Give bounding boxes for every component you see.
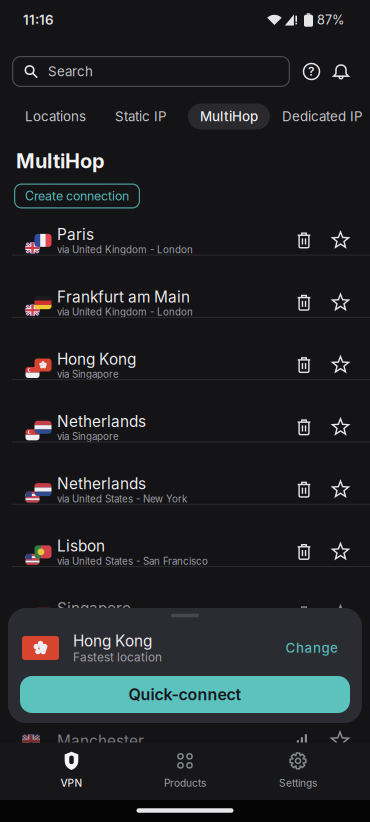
staticText: via Singapore bbox=[57, 431, 119, 442]
button[interactable]: Delete Frankfurt am Main connection bbox=[297, 295, 311, 311]
button[interactable]: Paris bbox=[0, 209, 370, 271]
button[interactable]: Hong Kong bbox=[0, 334, 370, 396]
staticText: via United States - San Francisco bbox=[57, 555, 208, 567]
button[interactable]: Delete Paris connection bbox=[297, 232, 311, 248]
button[interactable]: Delete Hong Kong connection bbox=[297, 357, 311, 373]
button[interactable]: Favorite Netherlands connection bbox=[332, 419, 349, 436]
staticText: MultiHop bbox=[16, 149, 105, 173]
staticText: Netherlands bbox=[57, 412, 146, 431]
staticText: Frankfurt am Main bbox=[57, 287, 190, 306]
button[interactable]: Dedicated IP bbox=[270, 108, 363, 124]
button[interactable]: Favorite Frankfurt am Main connection bbox=[332, 294, 349, 311]
staticText: VPN bbox=[60, 777, 82, 789]
button[interactable]: Netherlands bbox=[0, 396, 370, 458]
staticText: via United Kingdom - London bbox=[57, 306, 193, 318]
button[interactable]: VPN bbox=[26, 746, 116, 794]
button[interactable]: Quick-connect bbox=[20, 676, 350, 713]
button[interactable]: Favorite Hong Kong connection bbox=[332, 356, 349, 373]
staticText: Hong Kong bbox=[57, 350, 136, 368]
button[interactable]: Search bbox=[12, 56, 290, 87]
staticText: 87% bbox=[317, 12, 344, 28]
button[interactable]: Singapore bbox=[0, 583, 370, 645]
button[interactable]: Delete Lisbon connection bbox=[297, 544, 311, 560]
button[interactable]: Manchester bbox=[0, 732, 370, 750]
button[interactable]: Delete Netherlands connection bbox=[297, 419, 311, 435]
staticText: Dedicated IP bbox=[282, 108, 363, 124]
staticText: Singapore bbox=[57, 599, 131, 618]
staticText: Settings bbox=[279, 777, 317, 789]
button[interactable]: Favorite Netherlands connection bbox=[332, 481, 349, 498]
button[interactable]: Settings bbox=[253, 746, 343, 794]
button[interactable]: Products bbox=[140, 746, 230, 794]
staticText: Lisbon bbox=[57, 537, 105, 555]
staticText: Quick-connect bbox=[128, 685, 241, 704]
button[interactable]: Favorite Lisbon connection bbox=[332, 543, 349, 560]
staticText: 11:16 bbox=[23, 12, 54, 28]
button[interactable]: Favorite Singapore connection bbox=[332, 606, 349, 623]
button[interactable]: Help bbox=[303, 63, 320, 80]
staticText: Products bbox=[164, 777, 206, 789]
staticText: Create connection bbox=[25, 188, 129, 203]
button[interactable]: Frankfurt am Main bbox=[0, 272, 370, 334]
button[interactable]: MultiHop bbox=[188, 103, 270, 129]
button[interactable]: Lisbon bbox=[0, 521, 370, 583]
button[interactable]: Delete Singapore connection bbox=[297, 606, 311, 622]
button[interactable]: Create connection bbox=[14, 183, 140, 208]
staticText: via United Kingdom - London bbox=[57, 244, 193, 256]
staticText: MultiHop bbox=[200, 108, 258, 124]
staticText: Change bbox=[285, 640, 338, 656]
staticText: Search bbox=[48, 63, 93, 79]
staticText: via United States - New York bbox=[57, 493, 187, 505]
staticText: via Singapore bbox=[57, 368, 119, 380]
staticText: Fastest location bbox=[73, 650, 162, 664]
staticText: Static IP bbox=[115, 108, 167, 124]
button[interactable]: Delete Netherlands connection bbox=[297, 482, 311, 498]
button[interactable]: Static IP bbox=[115, 108, 167, 124]
staticText: Netherlands bbox=[57, 474, 146, 493]
button[interactable]: Netherlands bbox=[0, 458, 370, 521]
button[interactable]: Favorite Paris connection bbox=[332, 232, 349, 249]
button[interactable]: Locations bbox=[25, 108, 86, 124]
staticText: Paris bbox=[57, 225, 94, 244]
staticText: Manchester bbox=[57, 732, 144, 750]
staticText: Hong Kong bbox=[73, 632, 152, 650]
staticText: ? bbox=[308, 64, 315, 79]
staticText: Locations bbox=[25, 108, 86, 124]
button[interactable]: Notifications bbox=[332, 62, 350, 80]
button[interactable]: Change bbox=[285, 640, 338, 656]
